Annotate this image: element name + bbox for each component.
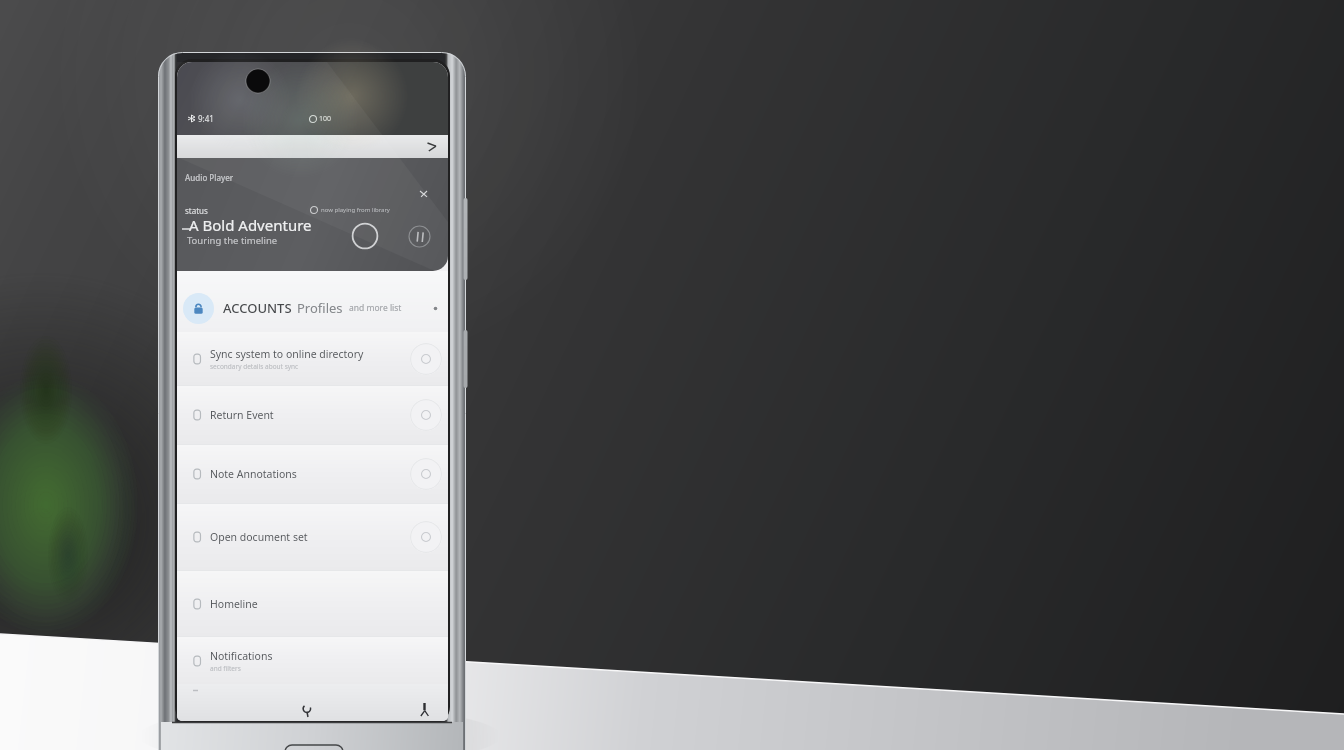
staticText: status	[185, 205, 208, 216]
other: Navigate	[427, 142, 436, 151]
staticText: Note Annotations	[210, 467, 297, 481]
button[interactable]: Action	[410, 343, 442, 375]
button[interactable]: Action	[410, 458, 442, 490]
staticText: Notifications	[210, 649, 273, 663]
button[interactable]: Account	[413, 698, 435, 720]
staticText: Return Event	[210, 408, 274, 422]
button[interactable]: Action	[410, 399, 442, 431]
staticText: Audio Player	[185, 172, 234, 183]
staticText: 9:41	[198, 113, 214, 124]
staticText: Profiles	[297, 299, 343, 317]
staticText: A Bold Adventure	[189, 215, 312, 235]
staticText: Touring the timeline	[187, 234, 278, 247]
staticText: Sync system to online directory	[210, 347, 364, 361]
staticText: Open document set	[210, 530, 308, 544]
other: Collapse	[420, 191, 427, 198]
button[interactable]: Voice search	[296, 700, 318, 721]
staticText: ACCOUNTS	[223, 299, 292, 317]
staticText: 100	[319, 114, 332, 124]
staticText: secondary details about sync	[210, 362, 299, 371]
button[interactable]: Open document set	[177, 504, 448, 570]
staticText: and filters	[210, 664, 241, 673]
button[interactable]: Return Event	[177, 386, 448, 444]
button[interactable]: Sync system to online directory	[177, 332, 448, 385]
other: Protected	[193, 303, 204, 314]
button[interactable]: Protected	[177, 271, 448, 332]
button[interactable]: Navigate	[177, 135, 448, 158]
staticText: now playing from library	[321, 206, 390, 214]
staticText: Homeline	[210, 597, 258, 611]
button[interactable]: Action	[410, 521, 442, 553]
button[interactable]: Note Annotations	[177, 445, 448, 503]
staticText: and more list	[349, 302, 402, 314]
button[interactable]: Homeline	[177, 571, 448, 636]
button[interactable]: Notifications	[177, 637, 448, 684]
button[interactable]: Queue	[408, 225, 431, 248]
button[interactable]: Play	[351, 222, 379, 250]
